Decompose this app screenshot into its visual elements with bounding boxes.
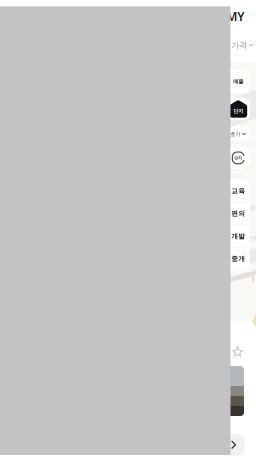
staticText: 신관: [247, 235, 256, 241]
staticText: 매물: [233, 78, 243, 85]
staticText: 중개: [231, 255, 245, 263]
button[interactable]: 가격: [231, 40, 253, 50]
button[interactable]: 단지: [227, 98, 250, 120]
staticText: 개발: [231, 232, 245, 240]
staticText: MY: [226, 8, 244, 24]
button[interactable]: MY: [226, 8, 244, 24]
button[interactable]: 중개: [227, 248, 250, 270]
button[interactable]: 교육: [227, 180, 250, 202]
button[interactable]: 개발: [227, 225, 250, 247]
button[interactable]: 다음 매물: [222, 434, 244, 456]
staticText: 1: [251, 275, 255, 283]
staticText: 편의: [231, 209, 245, 218]
staticText: 아파트: [245, 205, 256, 211]
button[interactable]: 매물: [227, 70, 250, 93]
button[interactable]: 관심 단지 추가: [229, 344, 246, 361]
staticText: 가격: [231, 40, 247, 50]
staticText: 단지: [233, 108, 243, 114]
button[interactable]: 현 지도에서 재검색: [227, 147, 250, 169]
button[interactable]: 호가: [227, 124, 250, 141]
staticText: 단지: [234, 155, 242, 160]
staticText: 호가: [230, 131, 240, 137]
staticText: 교육: [231, 187, 245, 195]
button[interactable]: 편의: [227, 203, 250, 225]
